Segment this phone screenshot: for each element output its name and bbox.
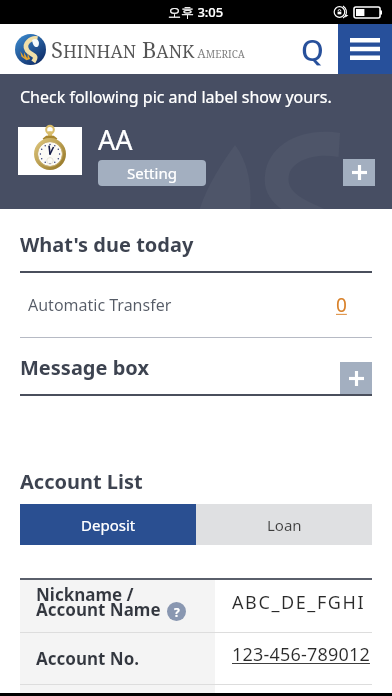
staticText: Setting (127, 163, 177, 183)
staticText: Deposit (81, 515, 136, 535)
staticText: What's due today (20, 231, 194, 258)
button[interactable]: Loan (196, 504, 372, 545)
staticText: Automatic Transfer (28, 294, 172, 316)
staticText: ABC_DE_FGHI (232, 590, 366, 615)
staticText: 오후 3:05 (168, 3, 224, 21)
staticText: Q (301, 30, 324, 69)
button[interactable]: Menu (338, 24, 392, 74)
button[interactable]: Nickname / Account Name (20, 580, 372, 632)
staticText: AA (98, 121, 133, 158)
staticText: 0 (336, 292, 347, 318)
button[interactable]: Add (343, 159, 375, 186)
button[interactable]: Account No. (20, 633, 372, 684)
staticText: SHINHAN BANK AMERICA (51, 34, 245, 64)
button[interactable]: Setting (98, 160, 206, 186)
button[interactable]: Search (286, 24, 338, 74)
staticText: Account No. (36, 647, 140, 670)
staticText: Account List (20, 468, 143, 495)
button[interactable]: Automatic Transfer (28, 273, 347, 337)
staticText: Loan (267, 515, 302, 535)
button[interactable]: Deposit (20, 504, 196, 545)
staticText: Nickname / Account Name (36, 583, 161, 621)
staticText: Check following pic and label show yours… (20, 86, 332, 108)
button[interactable]: Add message (340, 362, 372, 394)
staticText: Message box (20, 354, 149, 381)
staticText: ? (174, 604, 180, 620)
staticText: 123-456-789012 (232, 642, 370, 667)
